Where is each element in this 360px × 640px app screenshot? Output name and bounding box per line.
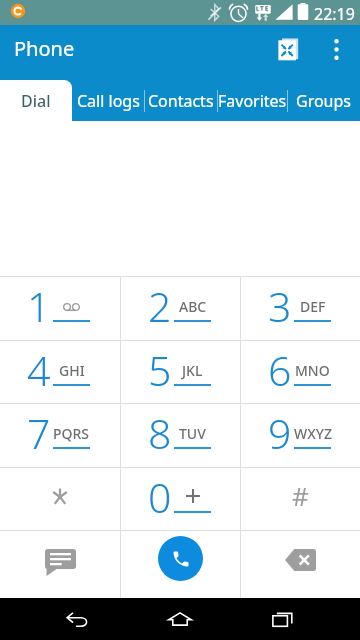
- staticText: ABC: [179, 297, 207, 316]
- staticText: 5: [148, 342, 172, 398]
- button[interactable]: 2: [121, 277, 240, 340]
- staticText: Groups: [296, 90, 352, 112]
- button[interactable]: 8: [121, 404, 240, 467]
- staticText: Favorites: [218, 90, 287, 112]
- button[interactable]: Favorites: [218, 80, 287, 121]
- staticText: 7: [27, 405, 51, 461]
- button[interactable]: Call logs: [72, 80, 144, 121]
- button[interactable]: Contacts: [145, 80, 217, 121]
- button[interactable]: Call: [121, 531, 240, 598]
- button[interactable]: Send message: [0, 531, 120, 598]
- staticText: 22:19: [314, 3, 355, 25]
- staticText: 4: [27, 342, 51, 398]
- staticText: 3: [268, 278, 292, 334]
- button[interactable]: 7: [0, 404, 120, 467]
- button[interactable]: [0, 468, 120, 530]
- staticText: TUV: [179, 424, 206, 443]
- button[interactable]: #: [241, 468, 360, 530]
- button[interactable]: More options: [316, 25, 356, 80]
- button[interactable]: Groups: [288, 80, 360, 121]
- button[interactable]: 9: [241, 404, 360, 467]
- button[interactable]: Home: [154, 598, 206, 640]
- staticText: PQRS: [53, 424, 90, 443]
- button[interactable]: Back: [51, 598, 103, 640]
- staticText: 6: [268, 342, 292, 398]
- staticText: DEF: [300, 297, 326, 316]
- button[interactable]: 1: [0, 277, 120, 340]
- button[interactable]: 4: [0, 341, 120, 403]
- staticText: 2: [148, 278, 172, 334]
- staticText: GHI: [59, 361, 85, 380]
- button[interactable]: 0: [121, 468, 240, 530]
- button[interactable]: Delete: [241, 531, 360, 598]
- button[interactable]: 3: [241, 277, 360, 340]
- staticText: WXYZ: [294, 424, 332, 443]
- staticText: 8: [148, 405, 172, 461]
- staticText: Call logs: [77, 90, 140, 112]
- staticText: JKL: [182, 361, 203, 380]
- staticText: Phone: [14, 35, 75, 62]
- button[interactable]: Dial: [0, 80, 72, 121]
- button[interactable]: Compact dial pad: [266, 25, 310, 80]
- staticText: Dial: [21, 90, 51, 112]
- staticText: MNO: [295, 361, 330, 380]
- staticText: Contacts: [148, 90, 214, 112]
- staticText: 1: [27, 278, 51, 334]
- button[interactable]: Recent apps: [257, 598, 309, 640]
- button[interactable]: 6: [241, 341, 360, 403]
- staticText: 0: [148, 469, 172, 525]
- staticText: 9: [268, 405, 292, 461]
- button[interactable]: 5: [121, 341, 240, 403]
- staticText: #: [292, 478, 309, 513]
